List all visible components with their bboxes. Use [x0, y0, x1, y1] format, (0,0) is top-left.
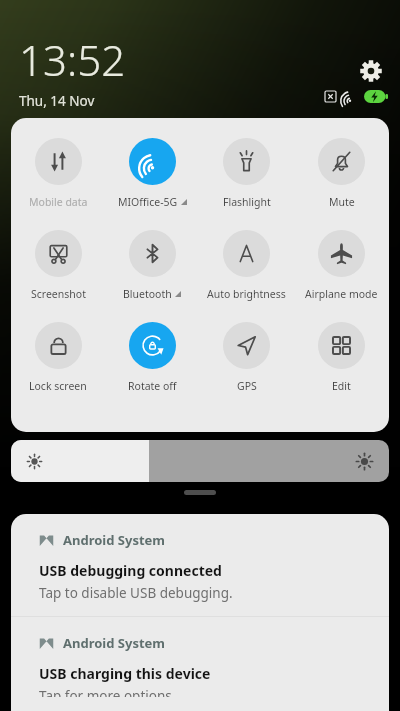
staticText: GPS: [237, 379, 257, 393]
button[interactable]: Airplane mode: [294, 229, 389, 302]
staticText: Screenshot: [31, 287, 86, 301]
button[interactable]: Android System: [11, 617, 389, 711]
staticText: USB debugging connected: [39, 561, 222, 580]
button[interactable]: Settings: [356, 56, 386, 86]
staticText: Thu, 14 Nov: [19, 92, 95, 110]
button[interactable]: Lock screen: [11, 321, 105, 394]
staticText: Android System: [63, 634, 166, 652]
button[interactable]: GPS: [199, 321, 294, 394]
staticText: Edit: [332, 379, 351, 393]
button[interactable]: Rotate off: [105, 321, 199, 394]
button[interactable]: MIOffice-5G: [105, 137, 199, 210]
button[interactable]: Expand notifications: [184, 490, 216, 495]
staticText: Mute: [329, 195, 355, 209]
staticText: Tap to disable USB debugging.: [39, 584, 233, 602]
staticText: Flashlight: [223, 195, 271, 209]
staticText: Mobile data: [29, 195, 88, 209]
staticText: Rotate off: [128, 379, 177, 393]
button[interactable]: Screenshot: [11, 229, 105, 302]
staticText: USB charging this device: [39, 664, 211, 683]
button[interactable]: Bluetooth: [105, 229, 199, 302]
staticText: Tap for more options.: [39, 687, 176, 697]
button[interactable]: Flashlight: [199, 137, 294, 210]
staticText: Bluetooth: [123, 287, 172, 301]
button[interactable]: Mobile data: [11, 137, 105, 210]
button[interactable]: Edit: [294, 321, 389, 394]
staticText: Android System: [63, 531, 166, 549]
staticText: Auto brightness: [207, 287, 286, 301]
staticText: Lock screen: [29, 379, 87, 393]
staticText: 13:52: [19, 31, 126, 88]
button[interactable]: Brightness: [11, 440, 389, 482]
button[interactable]: Android System: [11, 514, 389, 616]
staticText: Airplane mode: [305, 287, 378, 301]
button[interactable]: Auto brightness: [199, 229, 294, 302]
staticText: MIOffice-5G: [118, 195, 178, 209]
button[interactable]: Mute: [294, 137, 389, 210]
